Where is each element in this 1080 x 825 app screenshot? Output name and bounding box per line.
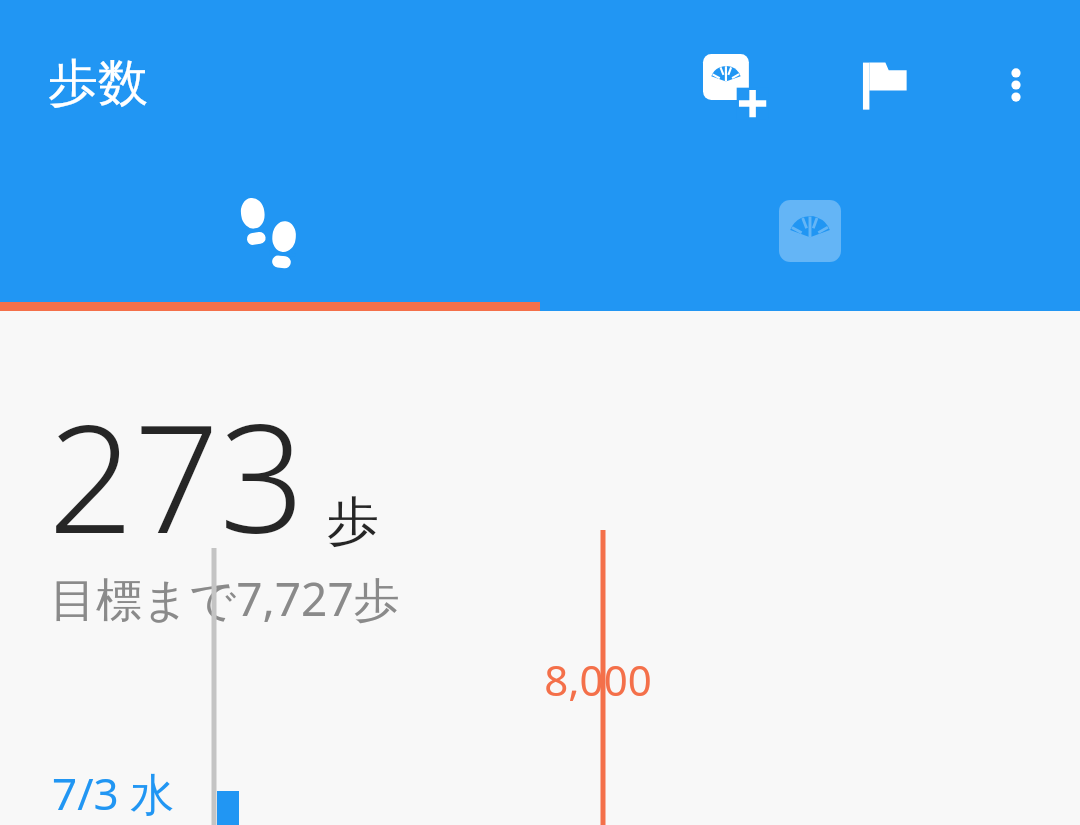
button[interactable]: 体重: [540, 170, 1080, 302]
staticText: 7/3 水: [52, 763, 175, 823]
staticText: 目標まで7,727歩: [50, 567, 400, 630]
button[interactable]: その他のオプション: [972, 41, 1060, 129]
button[interactable]: 歩数: [0, 170, 540, 302]
staticText: 歩数: [48, 52, 148, 115]
button[interactable]: 目標: [836, 39, 928, 131]
staticText: 273: [48, 373, 305, 577]
staticText: 歩: [327, 489, 379, 555]
button[interactable]: 体重を記録: [686, 37, 782, 133]
staticText: 8,000: [544, 651, 652, 708]
